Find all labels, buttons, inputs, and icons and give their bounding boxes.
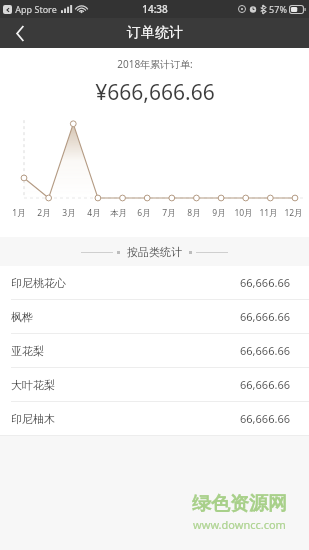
staticText: 亚花梨 (11, 344, 44, 358)
staticText: 57% (269, 3, 287, 15)
staticText: ¥666,666.66 (95, 78, 215, 107)
staticText: 大叶花梨 (11, 378, 55, 392)
staticText: 66,666.66 (240, 275, 290, 290)
staticText: 印尼柚木 (11, 412, 55, 426)
staticText: 66,666.66 (240, 377, 290, 392)
staticText: 9月 (212, 207, 226, 219)
staticText: 订单统计 (127, 24, 183, 42)
staticText: 3月 (62, 207, 76, 219)
staticText: 1月 (12, 207, 26, 219)
staticText: 2018年累计订单: (117, 57, 193, 71)
staticText: 14:38 (142, 2, 168, 16)
staticText: 10月 (234, 207, 253, 219)
staticText: 66,666.66 (240, 343, 290, 358)
button[interactable]: 大叶花梨 (0, 368, 309, 401)
staticText: 4月 (87, 207, 101, 219)
staticText: 66,666.66 (240, 411, 290, 426)
staticText: 66,666.66 (240, 309, 290, 324)
staticText: 印尼桃花心 (11, 276, 66, 290)
button[interactable]: 枫桦 (0, 300, 309, 333)
staticText: 6月 (137, 207, 151, 219)
staticText: 绿色资源网 (192, 492, 287, 516)
staticText: 7月 (162, 207, 176, 219)
button[interactable]: Back (0, 18, 40, 48)
staticText: 按品类统计 (127, 245, 182, 259)
staticText: 2月 (37, 207, 51, 219)
staticText: 本月 (110, 208, 127, 219)
button[interactable]: 印尼柚木 (0, 402, 309, 435)
staticText: 枫桦 (11, 310, 33, 324)
staticText: App Store (15, 3, 57, 15)
button[interactable]: 印尼桃花心 (0, 266, 309, 299)
staticText: 8月 (187, 207, 201, 219)
button[interactable]: 亚花梨 (0, 334, 309, 367)
staticText: 11月 (259, 207, 278, 219)
staticText: www.downcc.com (193, 517, 286, 532)
staticText: 12月 (284, 207, 303, 219)
